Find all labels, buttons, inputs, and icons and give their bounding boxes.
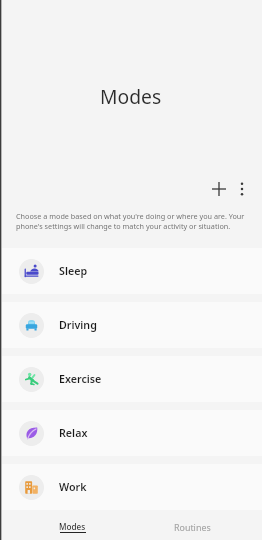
- staticText: Sleep: [59, 264, 88, 279]
- staticText: Driving: [59, 318, 97, 333]
- button[interactable]: Relax: [0, 410, 262, 456]
- button[interactable]: Add mode: [203, 173, 235, 205]
- staticText: Exercise: [59, 372, 102, 387]
- button[interactable]: Exercise: [0, 356, 262, 402]
- staticText: Choose a mode based on what you're doing…: [16, 211, 252, 231]
- button[interactable]: Modes: [12, 512, 132, 540]
- button[interactable]: Sleep: [0, 248, 262, 294]
- staticText: Relax: [59, 426, 88, 441]
- button[interactable]: More options: [226, 173, 258, 205]
- button[interactable]: Driving: [0, 302, 262, 348]
- staticText: Modes: [100, 83, 162, 109]
- button[interactable]: Routines: [132, 512, 253, 540]
- staticText: Routines: [174, 521, 211, 533]
- staticText: Work: [59, 480, 87, 495]
- staticText: Modes: [59, 521, 86, 532]
- button[interactable]: Work: [0, 464, 262, 510]
